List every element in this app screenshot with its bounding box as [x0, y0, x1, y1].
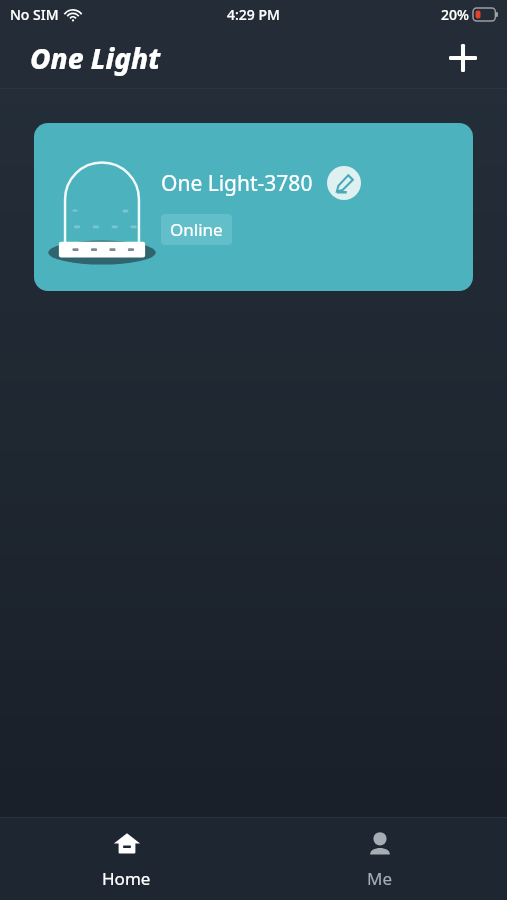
- staticText: Me: [367, 867, 393, 890]
- staticText: 4:29 PM: [227, 5, 280, 24]
- staticText: 20%: [441, 5, 469, 24]
- button[interactable]: Me: [253, 821, 507, 898]
- staticText: Home: [102, 867, 151, 890]
- staticText: One Light: [30, 39, 161, 77]
- staticText: Online: [170, 218, 223, 241]
- staticText: One Light-3780: [161, 169, 313, 198]
- button[interactable]: Add device: [443, 38, 483, 78]
- button[interactable]: Home: [0, 821, 253, 898]
- staticText: No SIM: [10, 5, 59, 24]
- button[interactable]: One Light-3780: [34, 123, 473, 291]
- button[interactable]: Edit device name: [327, 166, 361, 200]
